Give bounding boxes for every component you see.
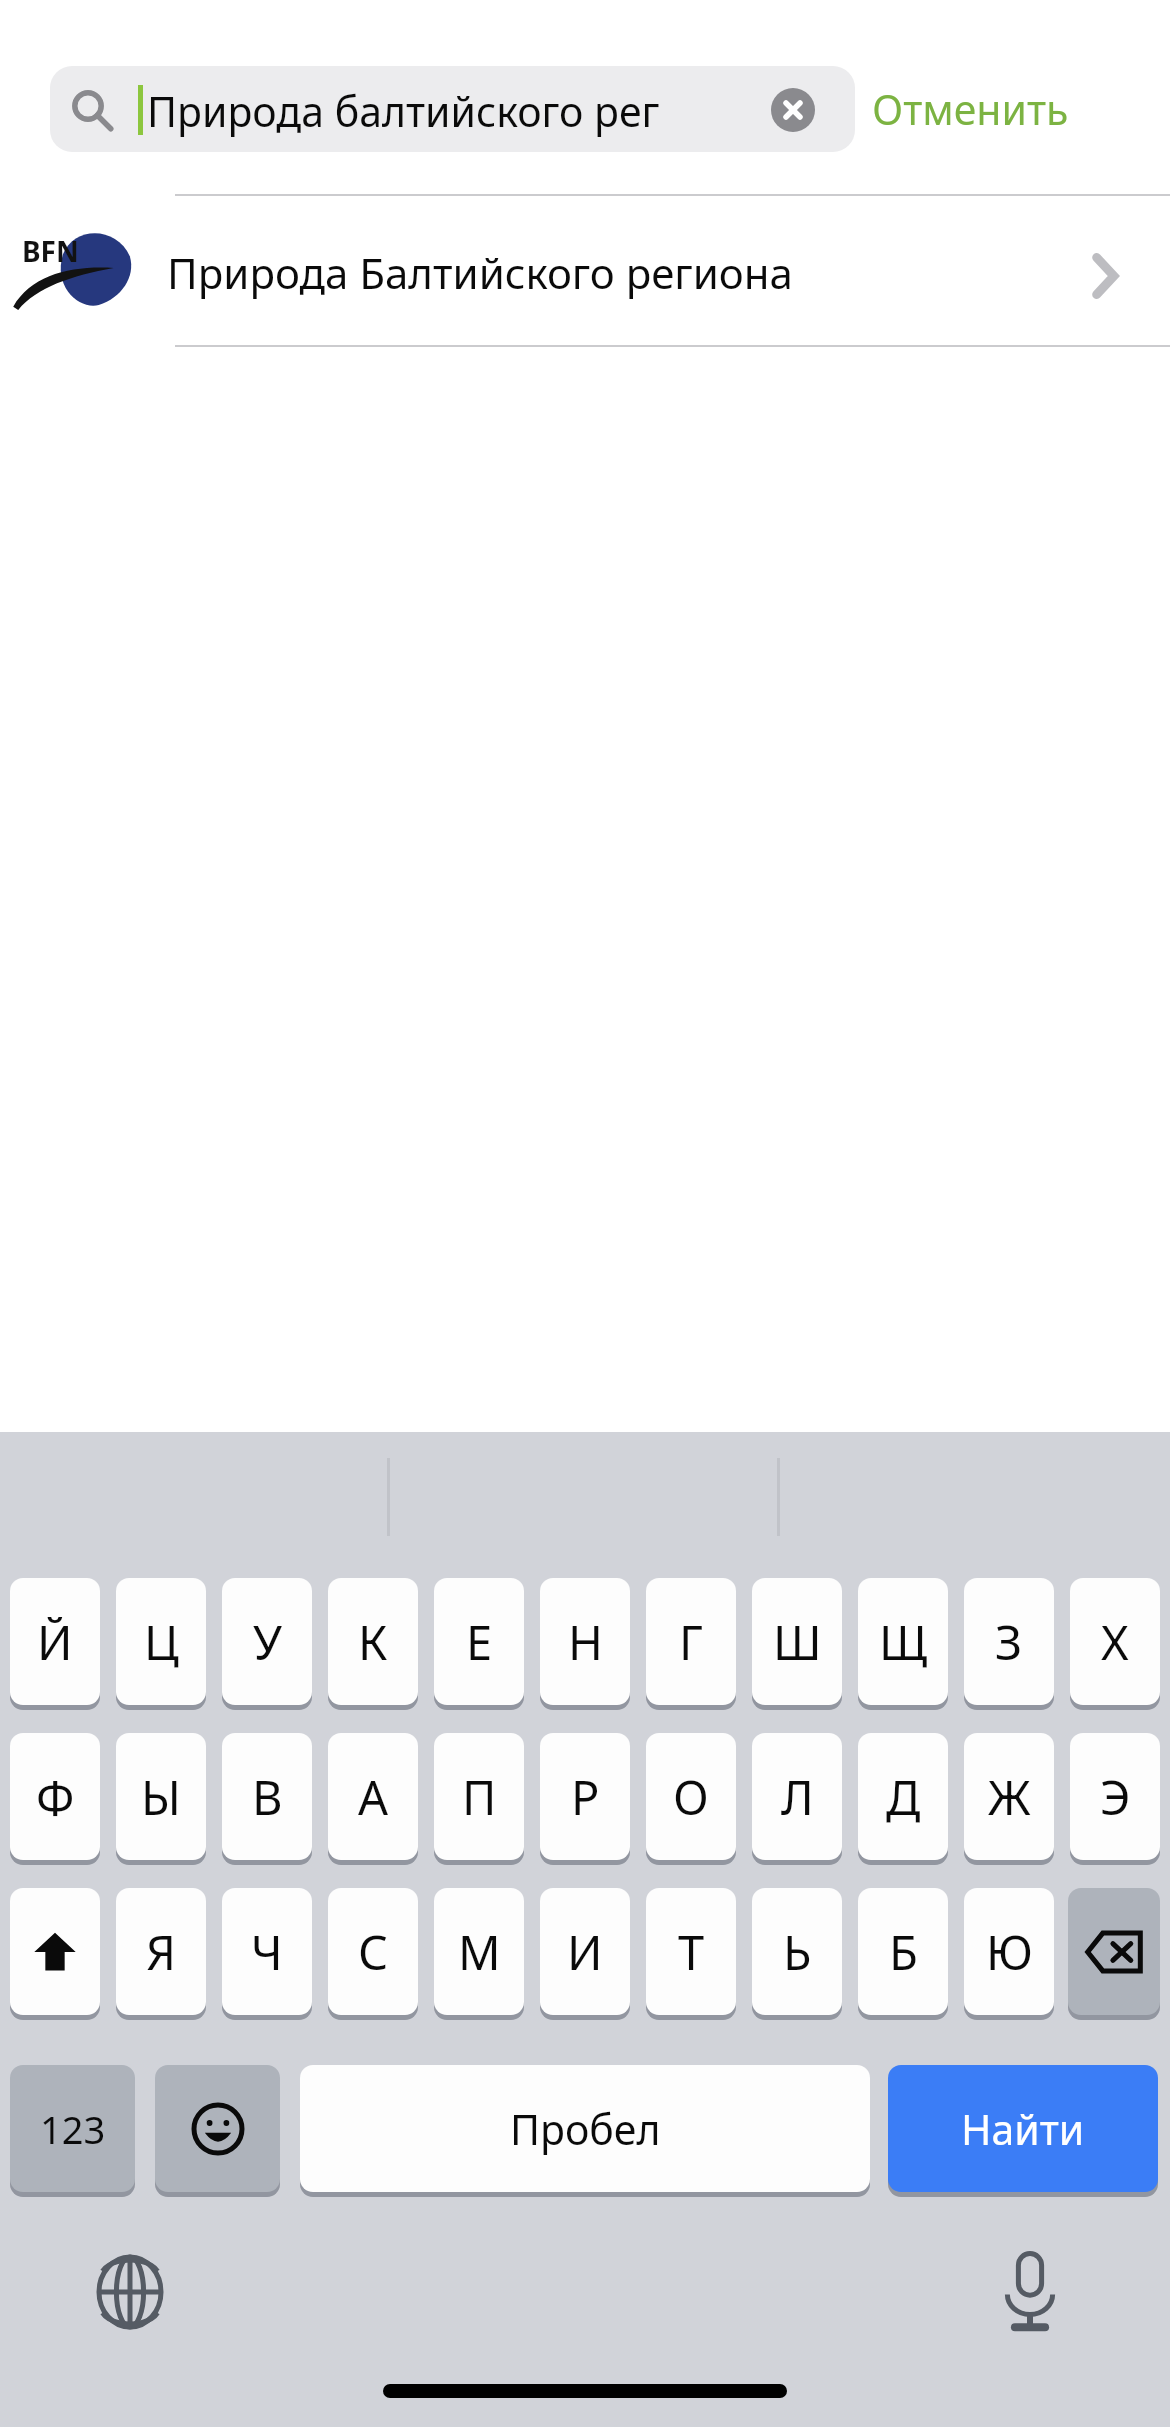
button[interactable]: Б: [858, 1888, 948, 2015]
button[interactable]: BFN: [0, 196, 1170, 345]
button[interactable]: М: [434, 1888, 524, 2015]
button[interactable]: Найти: [888, 2065, 1158, 2192]
staticText: Природа Балтийского региона: [167, 244, 793, 301]
button[interactable]: Э: [1070, 1733, 1160, 1860]
staticText: Ы: [141, 1765, 181, 1829]
staticText: Природа балтийского рег: [147, 83, 660, 139]
button[interactable]: Й: [10, 1578, 100, 1705]
staticText: Ю: [986, 1920, 1033, 1984]
button[interactable]: С: [328, 1888, 418, 2015]
button[interactable]: О: [646, 1733, 736, 1860]
staticText: Ч: [251, 1920, 283, 1984]
staticText: Отменить: [872, 81, 1069, 137]
staticText: К: [358, 1610, 388, 1674]
button[interactable]: Ж: [964, 1733, 1054, 1860]
staticText: Х: [1101, 1610, 1129, 1674]
button[interactable]: Я: [116, 1888, 206, 2015]
staticText: М: [458, 1920, 501, 1984]
button[interactable]: Shift: [10, 1888, 100, 2015]
button[interactable]: Ц: [116, 1578, 206, 1705]
button[interactable]: Х: [1070, 1578, 1160, 1705]
button[interactable]: Ы: [116, 1733, 206, 1860]
staticText: И: [567, 1920, 603, 1984]
staticText: Ш: [773, 1610, 822, 1674]
button[interactable]: В: [222, 1733, 312, 1860]
button[interactable]: З: [964, 1578, 1054, 1705]
staticText: Л: [781, 1765, 814, 1829]
button[interactable]: Backspace: [1068, 1888, 1160, 2015]
staticText: Ф: [36, 1765, 75, 1829]
staticText: В: [252, 1765, 283, 1829]
button[interactable]: И: [540, 1888, 630, 2015]
button[interactable]: П: [434, 1733, 524, 1860]
button[interactable]: 123: [10, 2065, 135, 2192]
button[interactable]: Н: [540, 1578, 630, 1705]
staticText: Т: [678, 1920, 705, 1984]
staticText: Пробел: [510, 2101, 661, 2157]
button[interactable]: Д: [858, 1733, 948, 1860]
button[interactable]: Emoji keyboard: [155, 2065, 280, 2192]
staticText: Р: [571, 1765, 600, 1829]
button[interactable]: Щ: [858, 1578, 948, 1705]
button[interactable]: Clear search text: [771, 88, 815, 132]
staticText: У: [253, 1610, 282, 1674]
button[interactable]: Т: [646, 1888, 736, 2015]
staticText: А: [358, 1765, 388, 1829]
staticText: Й: [37, 1610, 73, 1674]
button[interactable]: Ч: [222, 1888, 312, 2015]
staticText: Г: [679, 1610, 703, 1674]
button[interactable]: Л: [752, 1733, 842, 1860]
staticText: Д: [886, 1765, 921, 1829]
staticText: Э: [1100, 1765, 1131, 1829]
button[interactable]: Е: [434, 1578, 524, 1705]
button[interactable]: Пробел: [300, 2065, 870, 2192]
button[interactable]: Р: [540, 1733, 630, 1860]
button[interactable]: У: [222, 1578, 312, 1705]
button[interactable]: Природа балтийского рег: [50, 66, 855, 152]
button[interactable]: Ш: [752, 1578, 842, 1705]
staticText: Ц: [144, 1610, 179, 1674]
button[interactable]: Ф: [10, 1733, 100, 1860]
button[interactable]: А: [328, 1733, 418, 1860]
staticText: Я: [146, 1920, 176, 1984]
staticText: Найти: [961, 2101, 1085, 2157]
staticText: Е: [466, 1610, 493, 1674]
staticText: Н: [568, 1610, 603, 1674]
staticText: П: [462, 1765, 497, 1829]
button[interactable]: Г: [646, 1578, 736, 1705]
button[interactable]: К: [328, 1578, 418, 1705]
staticText: Ь: [783, 1920, 812, 1984]
staticText: О: [673, 1765, 709, 1829]
button[interactable]: Ю: [964, 1888, 1054, 2015]
button[interactable]: Switch keyboard language: [88, 2250, 172, 2334]
staticText: Б: [889, 1920, 918, 1984]
staticText: 123: [40, 2103, 106, 2155]
button[interactable]: Ь: [752, 1888, 842, 2015]
button[interactable]: Отменить: [872, 66, 1122, 152]
staticText: BFN: [22, 232, 79, 270]
button[interactable]: Dictation: [988, 2250, 1072, 2334]
staticText: С: [358, 1920, 389, 1984]
staticText: Ж: [988, 1765, 1031, 1829]
staticText: Щ: [879, 1610, 928, 1674]
staticText: З: [995, 1610, 1023, 1674]
